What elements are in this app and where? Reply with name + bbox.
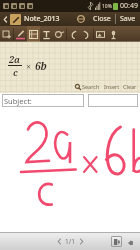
staticText: × xyxy=(26,60,32,72)
button[interactable]: Highlighter xyxy=(27,26,40,42)
button[interactable]: Add note xyxy=(0,26,13,42)
button[interactable]: Close xyxy=(93,12,111,26)
button[interactable]: Insert xyxy=(104,83,120,90)
button[interactable]: Value field xyxy=(88,94,138,107)
staticText: 2a xyxy=(9,53,21,65)
staticText: 6b xyxy=(35,59,47,73)
staticText: Search xyxy=(82,83,100,90)
button[interactable]: Previous page xyxy=(53,235,65,247)
button[interactable]: Share xyxy=(75,13,87,25)
button[interactable]: Search xyxy=(74,83,101,90)
button[interactable]: Note_2013 xyxy=(24,14,60,24)
button[interactable]: Subject: xyxy=(2,94,84,107)
button[interactable]: Insert image xyxy=(94,26,107,42)
staticText: Clear xyxy=(123,83,137,90)
staticText: Close xyxy=(93,14,111,24)
button[interactable]: Eraser xyxy=(53,26,66,42)
button[interactable]: Hand tool xyxy=(125,236,136,247)
button[interactable]: Note icon xyxy=(10,14,21,25)
button[interactable]: Back xyxy=(0,12,10,26)
button[interactable]: Voice xyxy=(107,26,120,42)
button[interactable]: Save xyxy=(120,12,136,26)
button[interactable]: Undo xyxy=(67,26,80,42)
button[interactable]: Next page xyxy=(75,235,87,247)
staticText: Subject: xyxy=(4,96,32,106)
button[interactable]: Pen xyxy=(14,26,27,42)
staticText: 10% xyxy=(102,3,112,10)
button[interactable]: 1/1 xyxy=(65,237,75,246)
button[interactable]: Clear xyxy=(123,83,137,90)
staticText: 00:49 xyxy=(120,1,138,11)
button[interactable]: Add page xyxy=(111,236,122,247)
staticText: Insert xyxy=(104,83,120,90)
staticText: c xyxy=(13,66,18,78)
button[interactable]: Text xyxy=(40,26,53,42)
staticText: Save xyxy=(120,14,136,24)
button[interactable]: Redo xyxy=(80,26,93,42)
